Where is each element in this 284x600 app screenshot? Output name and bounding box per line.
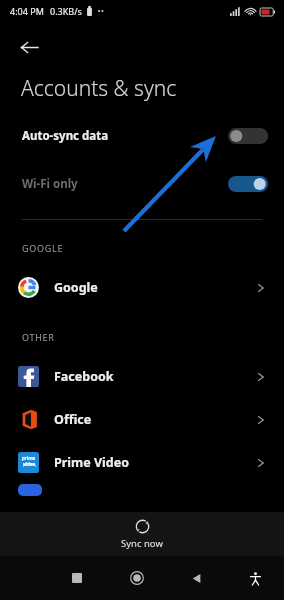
staticText: Accounts & sync (21, 74, 177, 103)
button[interactable]: prime (0, 441, 284, 484)
staticText: GOOGLE (22, 242, 64, 254)
button[interactable]: Sync now (0, 512, 284, 556)
staticText: Auto-sync data (22, 128, 109, 144)
staticText: OTHER (22, 331, 55, 343)
staticText: Sync now (121, 537, 163, 550)
staticText: Wi-Fi only (22, 176, 78, 192)
button[interactable]: Facebook (0, 355, 284, 398)
staticText: 0.3KB/s (50, 5, 82, 17)
button[interactable]: Auto-sync data (0, 121, 284, 151)
staticText: Prime Video (54, 454, 130, 471)
button[interactable]: Home (120, 561, 154, 595)
staticText: Google (54, 279, 98, 296)
staticText: prime (22, 455, 36, 461)
staticText: Facebook (54, 368, 114, 385)
button[interactable]: Back (10, 28, 48, 66)
button[interactable]: Wi-Fi only (0, 169, 284, 199)
staticText: 4:04 PM (10, 5, 44, 17)
staticText: Office (54, 411, 92, 428)
button[interactable]: Accessibility (238, 561, 272, 595)
staticText: video (23, 461, 36, 467)
button[interactable]: Recents (60, 561, 94, 595)
button[interactable]: Back (179, 561, 213, 595)
button[interactable]: Office (0, 398, 284, 441)
button[interactable]: Google (0, 266, 284, 309)
